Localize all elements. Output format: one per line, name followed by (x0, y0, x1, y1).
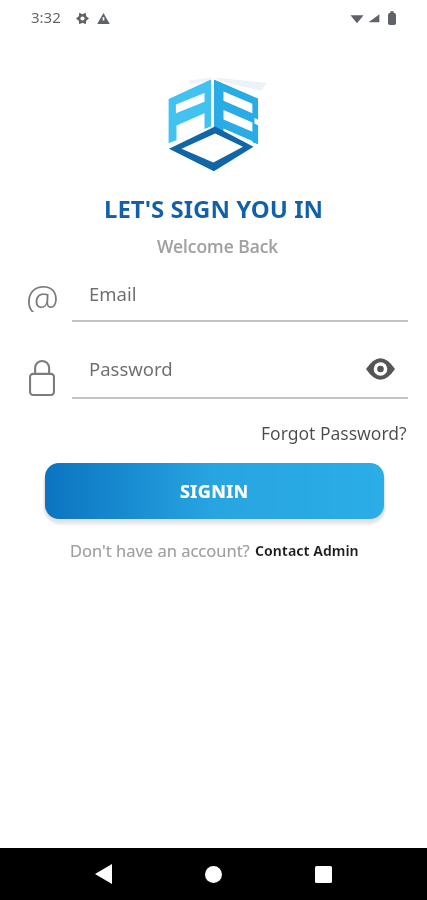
button[interactable]: Back (77, 848, 130, 900)
staticText: Password (89, 356, 173, 381)
button[interactable]: Contact Admin (255, 541, 359, 560)
button[interactable]: Forgot Password? (261, 421, 407, 445)
button[interactable]: Recent apps (297, 848, 350, 900)
staticText: LET'S SIGN YOU IN (0, 192, 427, 225)
staticText: SIGNIN (180, 479, 249, 504)
button[interactable]: SIGNIN (45, 463, 384, 519)
button[interactable]: Password (72, 356, 408, 398)
button[interactable]: Show password (364, 353, 396, 385)
staticText: Welcome Back (4, 234, 427, 258)
staticText: 3:32 (31, 7, 61, 27)
button[interactable]: Email (72, 280, 408, 322)
button[interactable]: Home (187, 848, 240, 900)
staticText: @ (26, 272, 59, 312)
staticText: Email (89, 281, 137, 306)
staticText: Don't have an account? (70, 539, 255, 561)
